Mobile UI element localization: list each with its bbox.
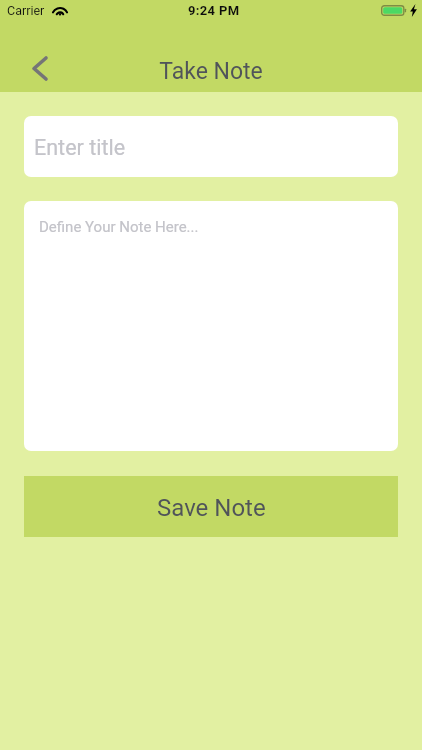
staticText: Enter title [34,135,126,160]
button[interactable]: Enter title [24,116,398,177]
staticText: Define Your Note Here... [39,218,199,236]
other: Wi-Fi signal [52,5,68,16]
staticText: Carrier [7,3,45,18]
button[interactable]: Save Note [24,476,398,537]
button[interactable]: Define Your Note Here... [24,201,398,451]
staticText: 9:24 PM [188,3,240,18]
other: Charging [410,4,417,17]
staticText: Save Note [157,494,266,522]
staticText: Take Note [159,58,263,85]
other: Battery full [381,5,407,16]
button[interactable]: Back [20,48,60,88]
